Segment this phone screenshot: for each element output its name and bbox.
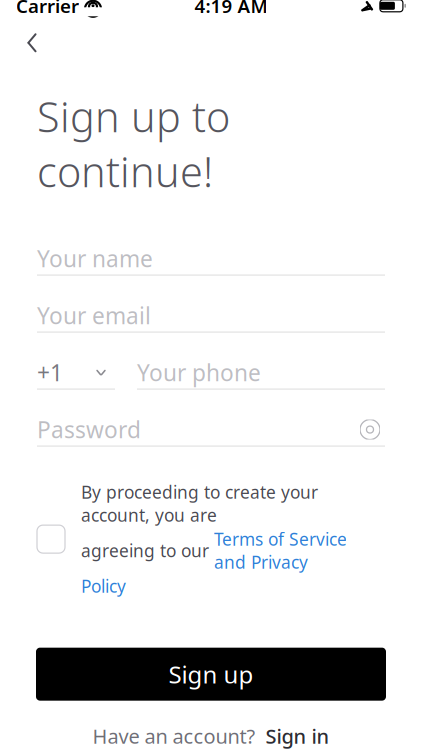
staticText: Terms of Service and Privacy [214,528,347,574]
staticText: agreeing to our [81,539,214,562]
staticText: Sign in [265,723,329,749]
button[interactable]: Back [10,21,54,65]
staticText: Your name [37,243,153,274]
staticText: Your phone [137,357,261,388]
button[interactable]: +1 [37,357,115,390]
button[interactable]: Agree to terms [37,525,81,553]
staticText: Have an account? [92,723,255,749]
staticText: By proceeding to create your account, yo… [81,481,318,527]
staticText: Password [37,414,141,445]
button[interactable]: Show password [355,416,385,444]
staticText: Carrier [16,0,79,18]
staticText: Your email [37,300,151,331]
button[interactable]: Policy [81,575,126,598]
button[interactable]: Sign up [36,648,386,701]
staticText: Policy [81,575,126,598]
staticText: 4:19 AM [194,0,267,18]
button[interactable]: Sign in [265,723,329,749]
staticText: +1 [37,357,63,388]
staticText: Sign up to continue! [37,89,230,199]
button[interactable]: Terms of Service and Privacy [214,528,347,574]
staticText: Sign up [168,658,253,690]
